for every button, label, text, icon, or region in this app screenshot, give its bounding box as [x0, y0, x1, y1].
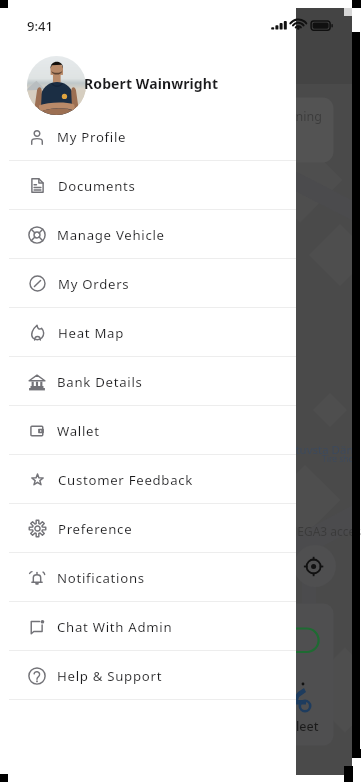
staticText: Pietuvsta Dängi [279, 442, 361, 458]
button[interactable]: Help & Support [0, 651, 296, 700]
staticText: My Profile [57, 128, 127, 146]
staticText: OMEGA3 accessories [277, 523, 361, 539]
staticText: Customer Feedback [58, 471, 194, 489]
staticText: Notifications [57, 569, 145, 587]
button[interactable]: Wallet [0, 406, 296, 455]
staticText: Bank Details [57, 373, 143, 391]
button[interactable]: Documents [0, 161, 296, 210]
staticText: Documents [58, 177, 136, 195]
button[interactable]: Customer Feedback [0, 455, 296, 504]
button[interactable]: My Orders [0, 259, 296, 308]
staticText: Robert Wainwright [84, 74, 219, 93]
staticText: Heat Map [58, 324, 125, 342]
staticText: Help & Support [57, 667, 163, 685]
button[interactable]: Preference [0, 504, 296, 553]
button[interactable] [0, 0, 296, 112]
button[interactable]: My Profile [0, 112, 296, 161]
staticText: Wallet [57, 422, 100, 440]
staticText: My Orders [58, 275, 130, 293]
button[interactable]: Notifications [0, 553, 296, 602]
staticText: Manage Vehicle [57, 226, 165, 244]
staticText: Tire shop [322, 453, 359, 465]
staticText: Preference [58, 520, 133, 538]
button[interactable]: Bank Details [0, 357, 296, 406]
button[interactable]: Chat With Admin [0, 602, 296, 651]
staticText: Delivery partner earning [178, 108, 322, 125]
staticText: 9:41 [27, 17, 53, 35]
staticText: Chat With Admin [57, 618, 173, 636]
button[interactable]: Manage Vehicle [0, 210, 296, 259]
button[interactable]: Heat Map [0, 308, 296, 357]
staticText: My Fleet [268, 718, 319, 735]
